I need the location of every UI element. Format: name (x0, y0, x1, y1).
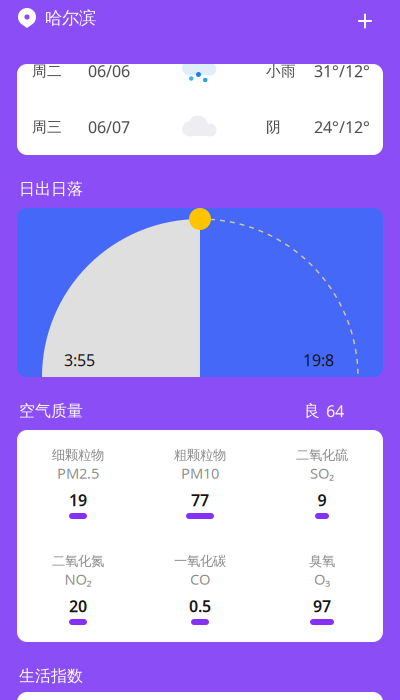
staticText: 0.5 (189, 595, 211, 617)
staticText: 粗颗粒物 (174, 447, 226, 463)
staticText: 周二 (32, 62, 62, 80)
button[interactable]: 哈尔滨 (0, 0, 110, 36)
staticText: 生活指数 (19, 666, 83, 686)
staticText: 20 (69, 595, 87, 617)
staticText: O₃ (314, 569, 330, 589)
staticText: 阴 (266, 118, 281, 136)
staticText: 97 (313, 595, 331, 617)
staticText: 06/07 (88, 116, 130, 138)
staticText: CO (190, 569, 210, 589)
staticText: 细颗粒物 (52, 447, 104, 463)
staticText: 周三 (32, 118, 62, 136)
staticText: 臭氧 (309, 553, 335, 569)
staticText: 77 (191, 489, 209, 511)
staticText: 空气质量 (19, 401, 83, 421)
staticText: 小雨 (266, 62, 296, 80)
staticText: NO₂ (64, 569, 91, 589)
staticText: 19 (69, 489, 87, 511)
staticText: 06/06 (88, 60, 130, 82)
staticText: 64 (326, 400, 344, 422)
staticText: 二氧化氮 (52, 553, 104, 569)
staticText: 日出日落 (19, 179, 83, 199)
staticText: SO₂ (310, 463, 334, 483)
staticText: PM2.5 (57, 463, 99, 483)
staticText: 二氧化硫 (296, 447, 348, 463)
staticText: 24°/12° (314, 116, 370, 138)
staticText: 9 (317, 489, 326, 511)
button[interactable]: Add city (343, 3, 387, 39)
staticText: 19:8 (303, 349, 334, 371)
staticText: 一氧化碳 (174, 553, 226, 569)
staticText: 哈尔滨 (45, 7, 96, 29)
staticText: 31°/12° (314, 60, 370, 82)
staticText: 3:55 (64, 349, 95, 371)
staticText: PM10 (181, 463, 219, 483)
staticText: 良 (304, 401, 320, 421)
